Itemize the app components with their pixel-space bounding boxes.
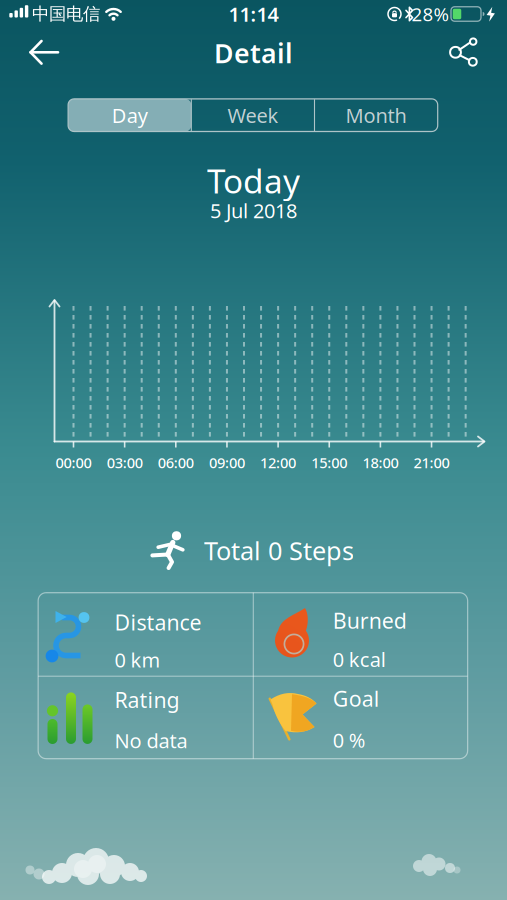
staticText: 06:00 <box>158 453 194 472</box>
staticText: 18:00 <box>362 453 398 472</box>
staticText: Total 0 Steps <box>204 533 354 567</box>
button[interactable]: Share <box>441 30 485 74</box>
staticText: Day <box>112 102 148 128</box>
staticText: 0 % <box>333 727 366 753</box>
staticText: 15:00 <box>311 453 347 472</box>
staticText: Burned <box>333 606 407 635</box>
staticText: 09:00 <box>209 453 245 472</box>
staticText: Week <box>227 102 278 128</box>
staticText: 28% <box>411 2 449 26</box>
button[interactable]: Week <box>191 99 314 131</box>
button[interactable]: Month <box>314 99 438 131</box>
button[interactable]: Back <box>22 30 66 74</box>
staticText: Month <box>346 102 407 128</box>
staticText: 0 kcal <box>333 646 386 672</box>
staticText: 11:14 <box>228 1 278 27</box>
staticText: 03:00 <box>107 453 143 472</box>
staticText: Rating <box>114 685 179 714</box>
staticText: 5 Jul 2018 <box>210 197 297 224</box>
staticText: Today <box>207 158 300 203</box>
staticText: Goal <box>333 684 380 712</box>
staticText: Distance <box>114 608 201 636</box>
staticText: 21:00 <box>414 453 450 472</box>
staticText: 12:00 <box>260 453 296 472</box>
staticText: 0 km <box>114 646 160 673</box>
staticText: 中国电信 <box>32 3 100 25</box>
staticText: 00:00 <box>55 453 91 472</box>
button[interactable]: Day <box>68 99 191 131</box>
staticText: Detail <box>214 35 293 71</box>
staticText: No data <box>114 727 187 754</box>
